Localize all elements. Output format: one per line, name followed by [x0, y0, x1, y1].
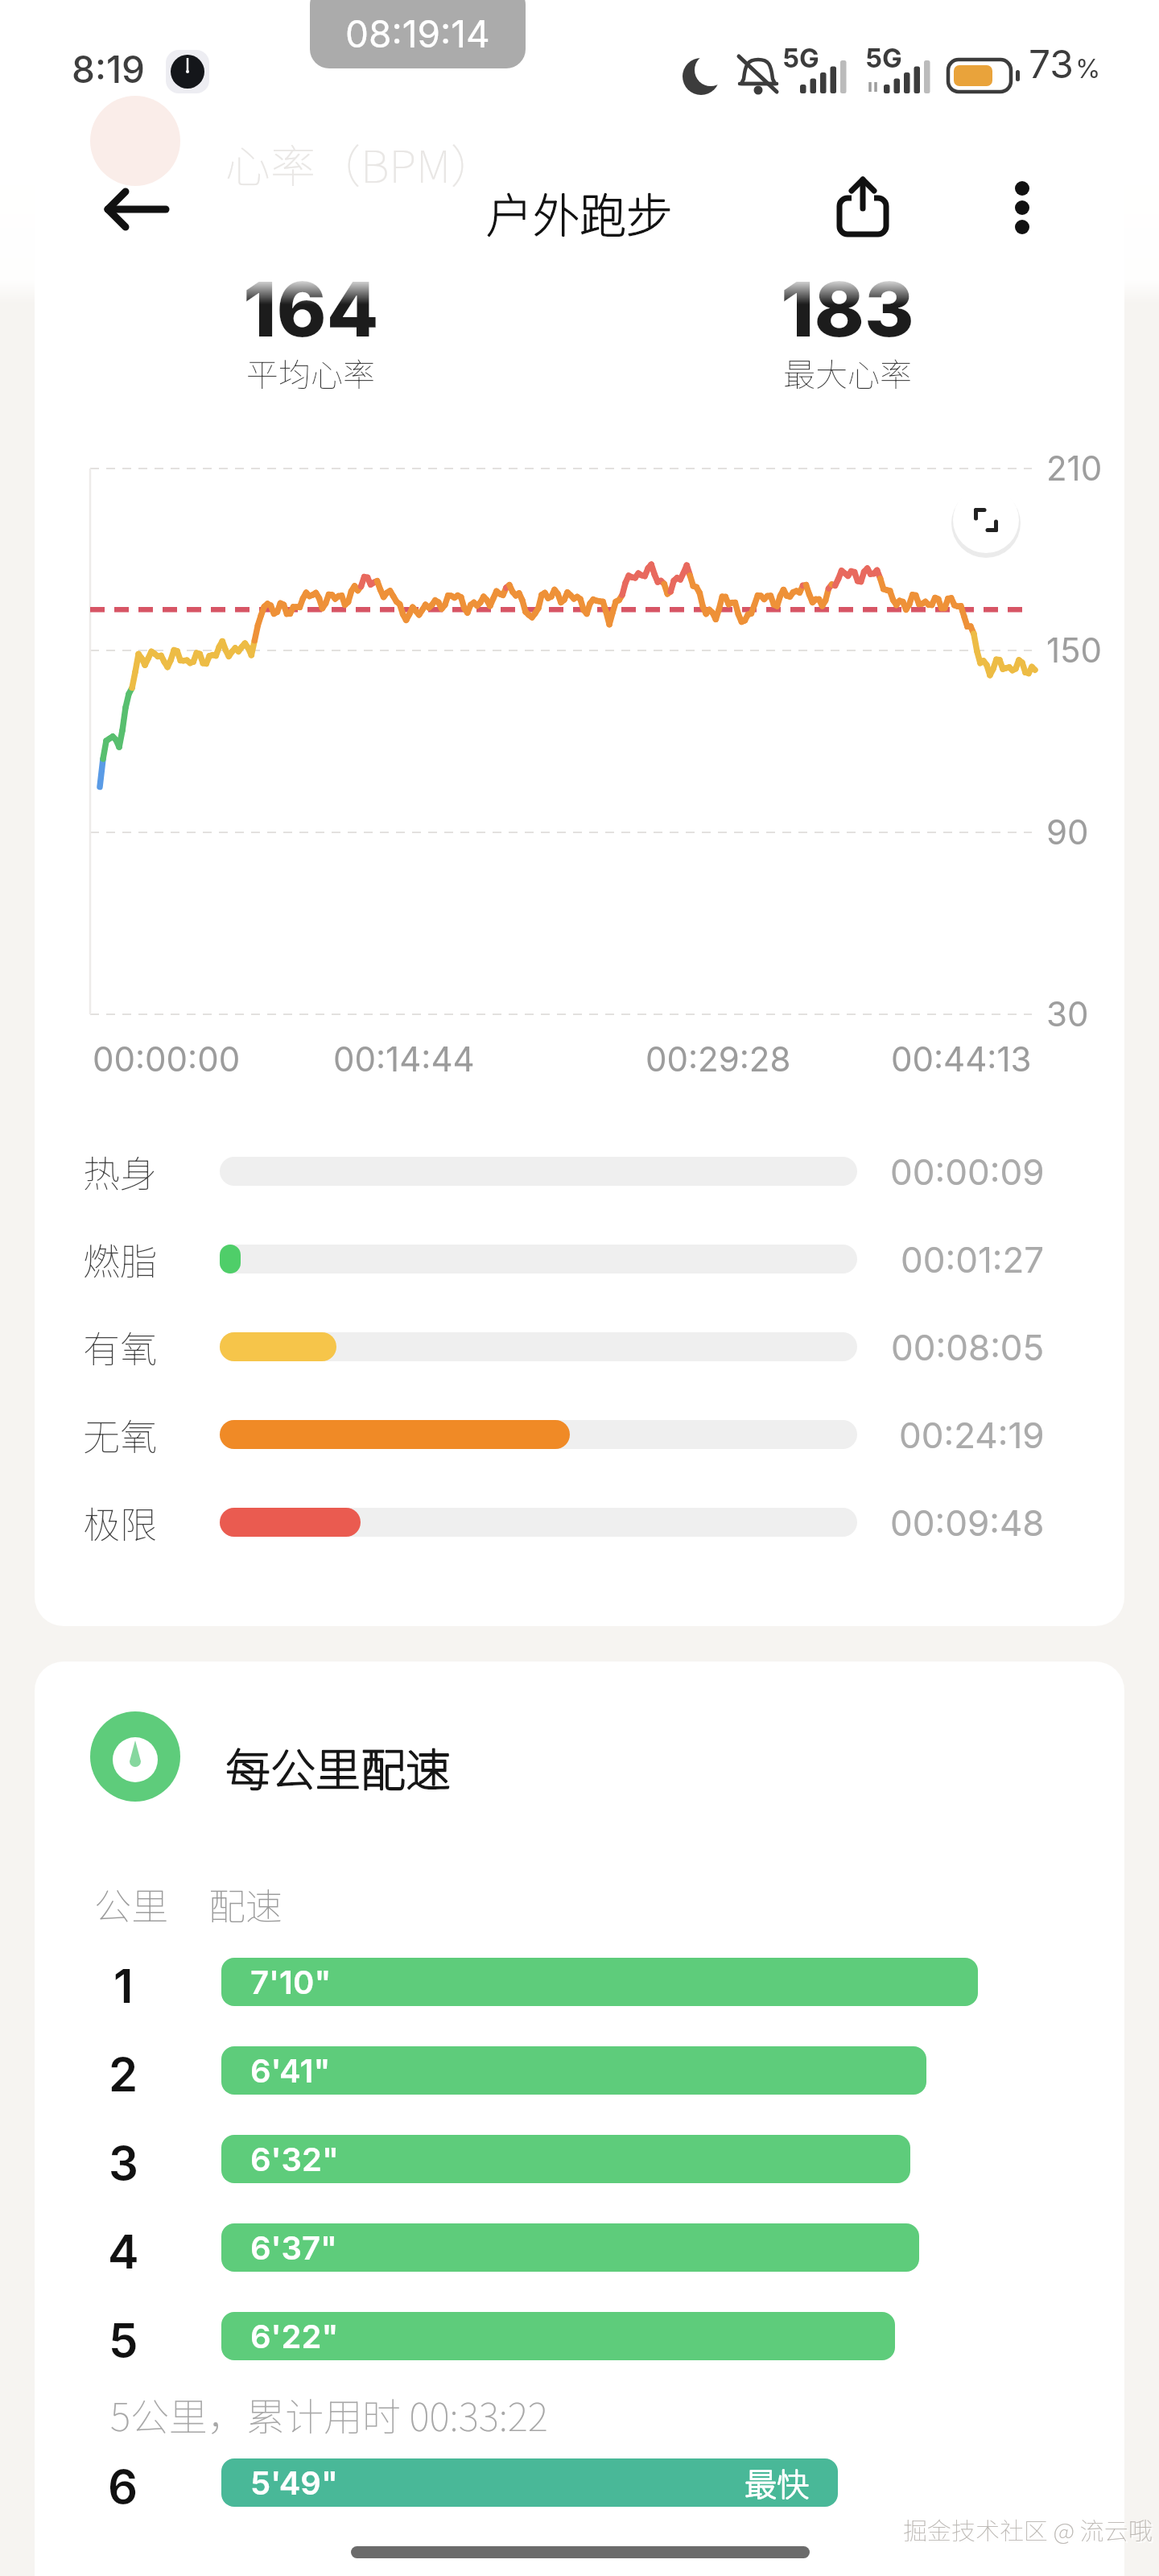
staticText: 每公里配速: [225, 1734, 451, 1799]
staticText: 7'10": [250, 1963, 332, 2001]
button[interactable]: 6'37": [221, 2223, 919, 2272]
staticText: 00:29:28: [645, 1038, 791, 1080]
staticText: 燃脂: [83, 1232, 157, 1286]
button[interactable]: [953, 487, 1019, 553]
staticText: 5公里，累计用时 00:33:22: [110, 2386, 548, 2442]
staticText: 210: [1046, 448, 1103, 489]
staticText: %: [1075, 53, 1101, 85]
button[interactable]: [80, 182, 193, 237]
staticText: 00:00:09: [890, 1150, 1045, 1193]
staticText: 6'37": [250, 2228, 338, 2267]
staticText: 164: [243, 263, 379, 355]
staticText: 心率（BPM）: [225, 130, 496, 196]
staticText: 6: [108, 2458, 138, 2507]
staticText: 平均心率: [246, 349, 375, 396]
staticText: 4: [108, 2223, 139, 2272]
staticText: 6'32": [250, 2140, 339, 2178]
button[interactable]: 6'22": [221, 2312, 895, 2360]
staticText: 00:01:27: [901, 1238, 1045, 1281]
button[interactable]: [984, 171, 1061, 245]
staticText: 00:24:19: [899, 1414, 1045, 1456]
button[interactable]: 5'49": [221, 2458, 838, 2507]
staticText: 每公里配速: [225, 1734, 451, 1799]
staticText: 掘金技术社区 @ 流云哦: [903, 2512, 1153, 2546]
staticText: 最快: [744, 2459, 809, 2506]
button[interactable]: 6'32": [221, 2135, 910, 2183]
staticText: 有氧: [83, 1320, 157, 1374]
staticText: 30: [1046, 993, 1089, 1034]
staticText: 73: [1029, 40, 1074, 87]
staticText: 公里: [94, 1877, 168, 1931]
staticText: 00:09:48: [890, 1501, 1045, 1544]
staticText: 2: [109, 2046, 138, 2095]
staticText: 90: [1046, 811, 1089, 852]
staticText: 08:19:14: [345, 11, 490, 56]
staticText: 1: [113, 1958, 134, 2006]
staticText: 最快: [744, 2459, 809, 2506]
staticText: 5G: [782, 42, 819, 74]
staticText: 最大心率: [783, 349, 912, 396]
staticText: 00:00:00: [93, 1038, 241, 1080]
staticText: 00:44:13: [891, 1038, 1032, 1080]
staticText: 5: [109, 2312, 138, 2360]
staticText: 00:14:44: [333, 1038, 475, 1080]
staticText: 掘金技术社区 @ 流云哦: [905, 2513, 1154, 2548]
staticText: 5G: [865, 42, 902, 74]
staticText: 6'41": [250, 2051, 331, 2090]
staticText: 5'49": [250, 2463, 338, 2502]
staticText: 00:08:05: [891, 1326, 1045, 1368]
button[interactable]: [823, 171, 903, 245]
button[interactable]: 7'10": [221, 1958, 978, 2006]
staticText: 150: [1046, 630, 1103, 671]
staticText: 3: [109, 2135, 138, 2183]
staticText: 无氧: [83, 1408, 157, 1462]
staticText: 6'22": [250, 2317, 339, 2355]
staticText: 户外跑步: [486, 179, 674, 246]
staticText: 热身: [83, 1145, 157, 1199]
staticText: 极限: [83, 1496, 157, 1550]
button[interactable]: 6'41": [221, 2046, 926, 2095]
staticText: 配速: [208, 1877, 283, 1931]
staticText: 8:19: [72, 47, 145, 92]
staticText: 户外跑步: [486, 179, 674, 246]
staticText: 183: [781, 263, 914, 355]
